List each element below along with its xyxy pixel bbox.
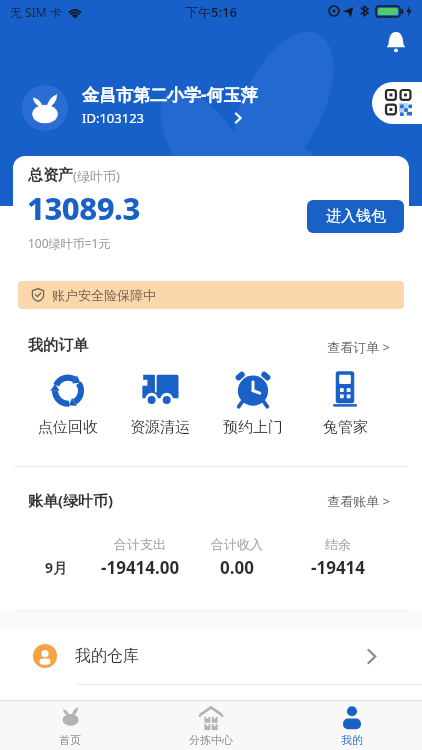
staticText: 资源清运 [130, 418, 190, 437]
staticText: 我的 [341, 733, 363, 747]
staticText: 兔管家 [323, 418, 368, 437]
staticText: 账单(绿叶币) [28, 490, 114, 510]
staticText: 账户安全险保障中 [52, 287, 156, 303]
button[interactable]: 进入钱包 [307, 200, 404, 233]
staticText: 9月 [45, 558, 68, 577]
button[interactable]: 账户安全险保障中 [18, 281, 404, 309]
staticText: 金昌市第二小学-何玉萍 [82, 83, 258, 106]
staticText: -19414.00 [101, 556, 180, 579]
staticText: 分拣中心 [189, 733, 233, 747]
staticText: 总资产 [28, 166, 73, 185]
button[interactable]: 查看账单 > [0, 492, 390, 510]
staticText: 0.00 [220, 556, 254, 579]
staticText: 合计支出 [114, 536, 166, 552]
staticText: 首页 [59, 733, 81, 747]
staticText: 下午5:16 [0, 3, 422, 21]
staticText: ID:103123 [82, 109, 144, 127]
staticText: 预约上门 [223, 418, 283, 437]
button[interactable]: 我的 [281, 700, 422, 750]
button[interactable]: 查看订单 > [0, 338, 390, 356]
button[interactable]: 分拣中心 [140, 700, 281, 750]
staticText: (绿叶币) [73, 167, 120, 185]
staticText: 我的订单 [28, 336, 88, 355]
button[interactable] [372, 82, 422, 124]
button[interactable] [380, 26, 412, 58]
button[interactable]: 点位回收 [22, 368, 114, 444]
staticText: 结余 [325, 536, 351, 552]
button[interactable]: 兔管家 [299, 368, 391, 444]
staticText: 13089.3 [27, 187, 140, 229]
staticText: 进入钱包 [326, 207, 386, 226]
staticText: 合计收入 [211, 536, 263, 552]
staticText: 100绿叶币=1元 [28, 235, 111, 251]
staticText: 我的仓库 [75, 646, 139, 666]
button[interactable]: 金昌市第二小学-何玉萍 [82, 83, 258, 127]
button[interactable]: 资源清运 [114, 368, 206, 444]
staticText: -19414 [311, 556, 366, 579]
button[interactable]: 我的仓库 [0, 628, 422, 684]
staticText: 无 SIM 卡 [10, 4, 62, 20]
button[interactable]: 首页 [0, 700, 140, 750]
button[interactable]: 预约上门 [207, 368, 299, 444]
staticText: 点位回收 [38, 418, 98, 437]
